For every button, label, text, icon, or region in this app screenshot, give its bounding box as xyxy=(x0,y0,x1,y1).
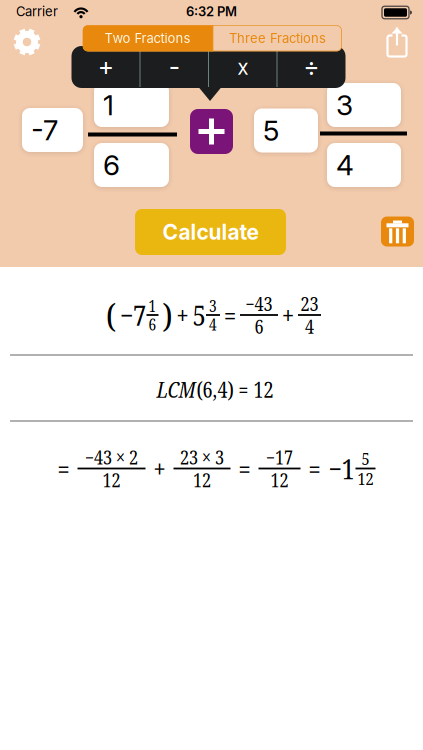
staticText: 4 xyxy=(305,313,314,339)
staticText: 3 xyxy=(209,295,217,317)
staticText: 12 xyxy=(193,467,211,493)
staticText: ) xyxy=(162,292,172,337)
button[interactable]: + xyxy=(73,47,139,87)
staticText: 1 xyxy=(103,88,114,122)
staticText: = xyxy=(57,451,69,486)
button[interactable]: 1 xyxy=(94,83,169,127)
button[interactable]: Operation: plus xyxy=(190,109,233,154)
staticText: 6 xyxy=(254,313,263,339)
staticText: ÷ xyxy=(303,52,319,82)
staticText: LCM xyxy=(156,375,195,404)
button[interactable]: Two Fractions xyxy=(83,25,212,51)
staticText: 5 xyxy=(192,296,205,334)
staticText: 4 xyxy=(209,313,217,335)
button[interactable]: x xyxy=(210,47,276,87)
staticText: = xyxy=(224,297,236,333)
staticText: −7 xyxy=(120,296,146,334)
staticText: Carrier xyxy=(16,4,58,19)
staticText: 6:32 PM xyxy=(186,4,237,19)
staticText: ( xyxy=(106,292,116,337)
staticText: 1 xyxy=(148,295,156,317)
staticText: - xyxy=(169,52,180,82)
button[interactable]: Calculate xyxy=(135,209,286,255)
button[interactable]: Three Fractions xyxy=(213,25,342,51)
staticText: + xyxy=(98,52,114,82)
staticText: (6,4) = 12 xyxy=(196,375,273,404)
staticText: 3 xyxy=(336,88,353,122)
staticText: + xyxy=(282,297,294,333)
staticText: Three Fractions xyxy=(229,30,326,46)
button[interactable]: Settings xyxy=(12,27,42,57)
button[interactable]: Clear xyxy=(381,216,414,246)
staticText: x xyxy=(237,54,248,80)
button[interactable]: 5 xyxy=(254,108,318,152)
staticText: −1 xyxy=(328,449,354,487)
staticText: −43 xyxy=(245,291,272,317)
staticText: −17 xyxy=(266,444,293,470)
staticText: 12 xyxy=(102,467,120,493)
staticText: 23 xyxy=(300,291,318,317)
staticText: + xyxy=(176,297,188,333)
staticText: 12 xyxy=(357,467,373,490)
staticText: = xyxy=(308,451,320,486)
button[interactable]: 4 xyxy=(327,143,401,187)
staticText: 6 xyxy=(148,313,156,335)
button[interactable]: -7 xyxy=(22,108,83,152)
staticText: -7 xyxy=(31,113,58,147)
staticText: 5 xyxy=(361,447,369,470)
staticText: −43 × 2 xyxy=(85,444,138,470)
button[interactable]: 6 xyxy=(94,143,169,187)
button[interactable]: ÷ xyxy=(278,47,344,87)
staticText: 23 × 3 xyxy=(180,444,224,470)
button[interactable]: - xyxy=(141,47,207,87)
staticText: Calculate xyxy=(162,219,258,245)
button[interactable]: 3 xyxy=(327,83,401,127)
staticText: Two Fractions xyxy=(105,30,191,46)
staticText: + xyxy=(153,451,165,486)
staticText: 6 xyxy=(103,148,120,182)
staticText: = xyxy=(238,451,250,486)
staticText: 12 xyxy=(270,467,288,493)
staticText: 4 xyxy=(336,148,354,182)
button[interactable]: Share xyxy=(383,26,410,57)
staticText: 5 xyxy=(263,114,279,147)
